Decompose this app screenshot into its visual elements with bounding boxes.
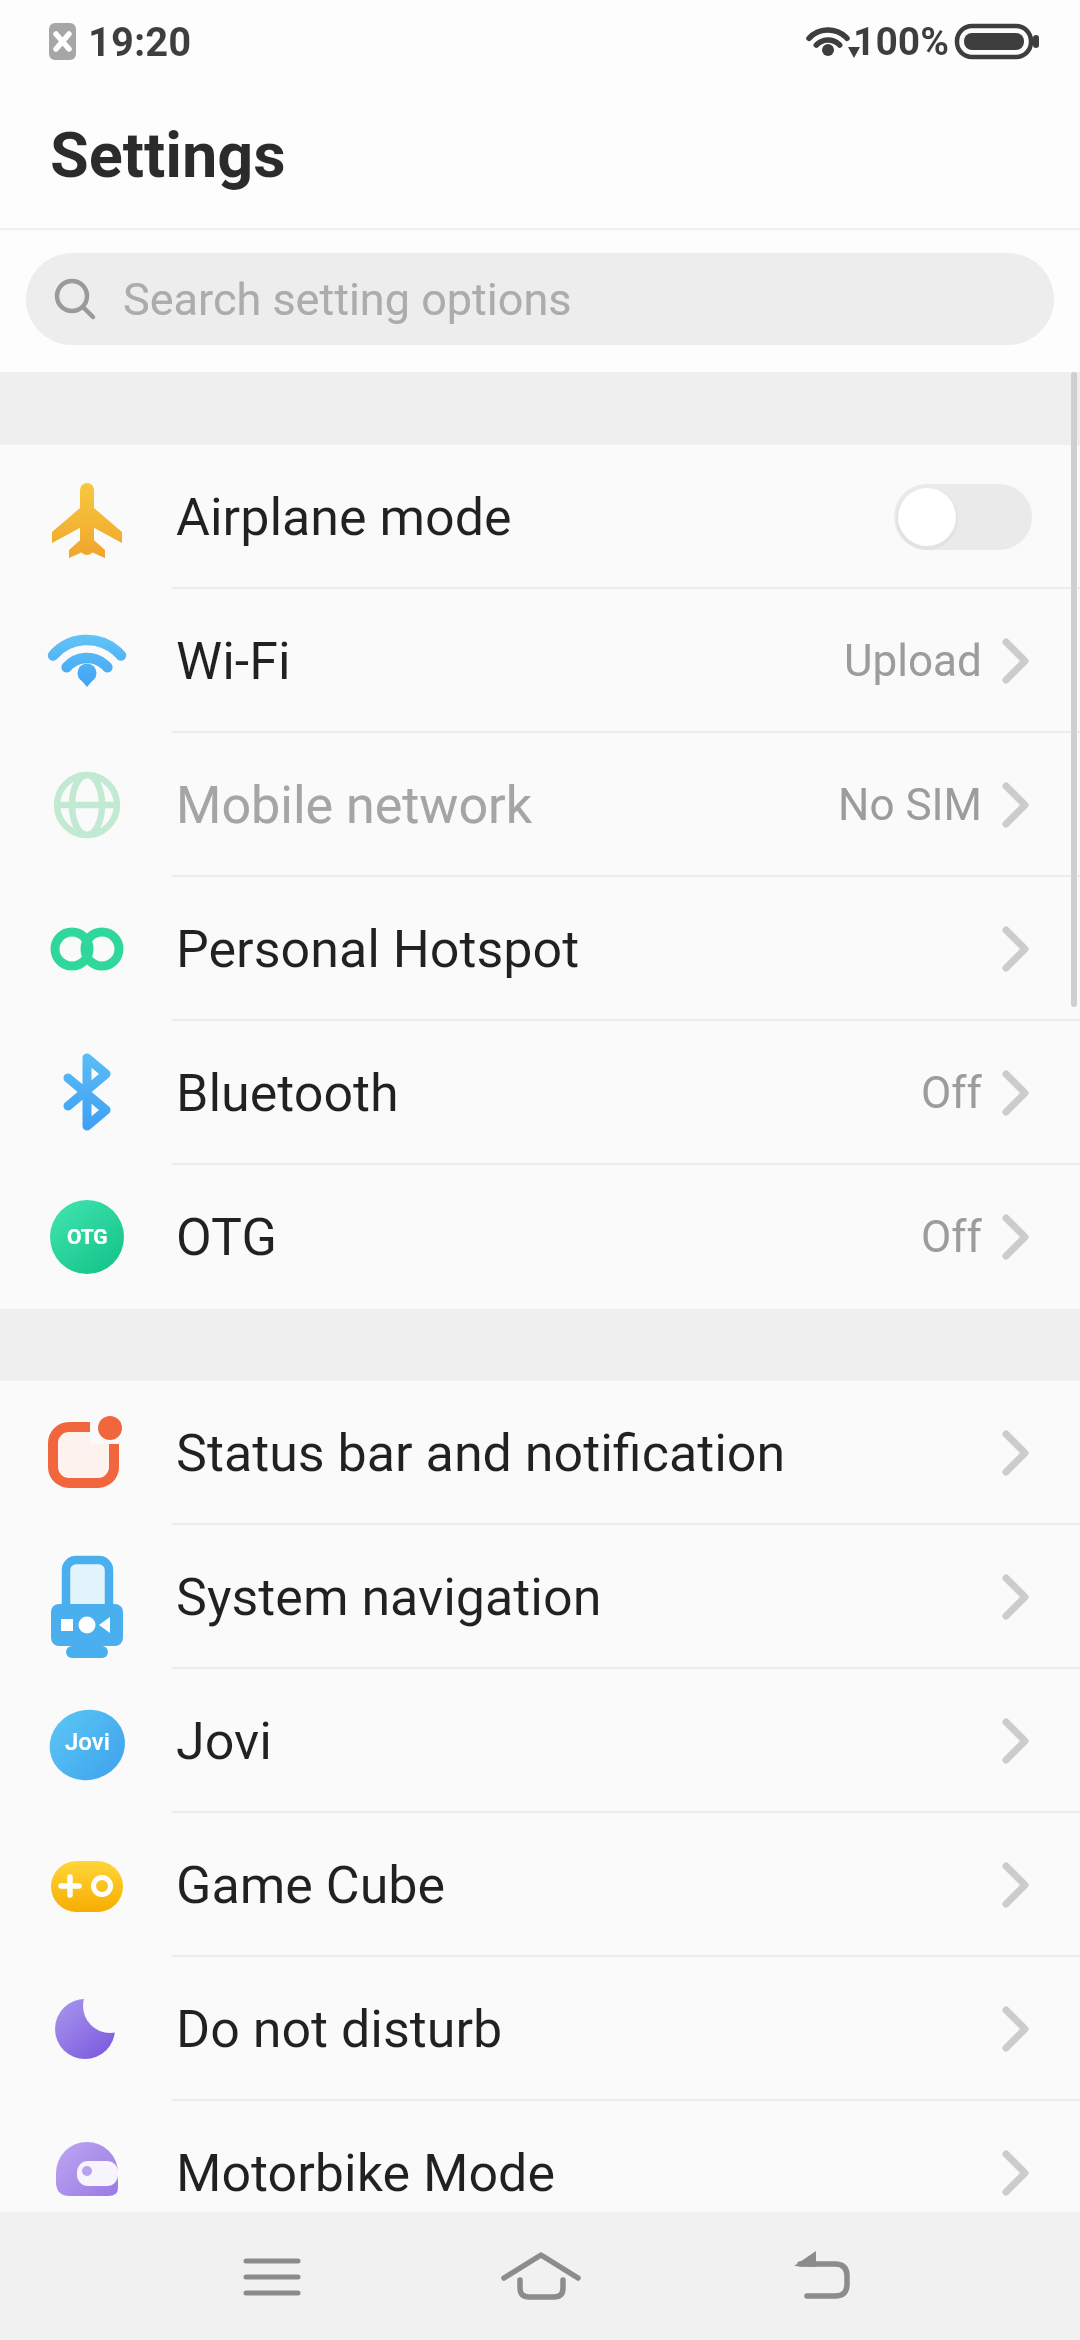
staticText: Settings: [50, 119, 286, 193]
button[interactable]: Personal Hotspot: [0, 877, 1080, 1021]
button[interactable]: [132, 2212, 404, 2340]
staticText: OTG: [67, 1225, 108, 1250]
button[interactable]: Mobile network: [0, 733, 1080, 877]
staticText: No SIM: [838, 779, 982, 831]
button[interactable]: [404, 2212, 676, 2340]
staticText: Jovi: [65, 1728, 110, 1756]
staticText: Wi-Fi: [176, 631, 291, 692]
staticText: Do not disturb: [176, 1999, 503, 2060]
button[interactable]: [676, 2212, 948, 2340]
staticText: Off: [921, 1067, 982, 1119]
staticText: Motorbike Mode: [176, 2143, 555, 2204]
staticText: Search setting options: [123, 273, 572, 326]
staticText: Airplane mode: [176, 487, 512, 548]
button[interactable]: Search setting options: [26, 253, 1054, 345]
button[interactable]: OTG: [0, 1165, 1080, 1309]
button[interactable]: Wi-Fi: [0, 589, 1080, 733]
staticText: OTG: [176, 1207, 277, 1268]
staticText: System navigation: [176, 1567, 602, 1628]
staticText: 100%: [853, 19, 949, 65]
staticText: Bluetooth: [176, 1063, 399, 1124]
staticText: Off: [921, 1211, 982, 1263]
staticText: Personal Hotspot: [176, 919, 580, 980]
staticText: 19:20: [88, 19, 192, 66]
button[interactable]: Game Cube: [0, 1813, 1080, 1957]
button[interactable]: System navigation: [0, 1525, 1080, 1669]
button[interactable]: Status bar and notification: [0, 1381, 1080, 1525]
staticText: Status bar and notification: [176, 1423, 786, 1484]
staticText: Jovi: [176, 1711, 272, 1772]
staticText: Game Cube: [176, 1855, 446, 1916]
button[interactable]: Bluetooth: [0, 1021, 1080, 1165]
staticText: Upload: [844, 635, 982, 687]
button[interactable]: Jovi: [0, 1669, 1080, 1813]
button[interactable]: Do not disturb: [0, 1957, 1080, 2101]
staticText: Mobile network: [176, 775, 533, 836]
button[interactable]: Motorbike Mode: [0, 2101, 1080, 2245]
button[interactable]: Airplane mode: [0, 445, 1080, 589]
